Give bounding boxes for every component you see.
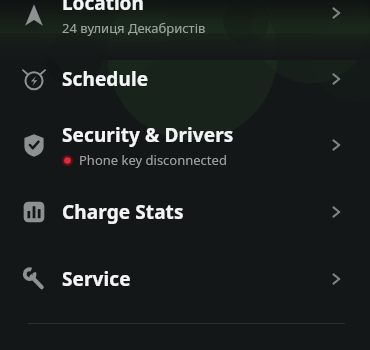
staticText: Location xyxy=(62,0,144,16)
other: Security and Drivers xyxy=(22,133,46,157)
button[interactable]: Location xyxy=(0,0,370,46)
staticText: Charge Stats xyxy=(62,199,184,225)
staticText: Service xyxy=(62,266,131,292)
button[interactable]: Security and Drivers xyxy=(0,112,370,178)
button[interactable]: Charge Stats xyxy=(0,178,370,245)
staticText: Security & Drivers xyxy=(62,122,234,148)
other: Service xyxy=(22,267,46,291)
other: Schedule xyxy=(22,67,46,91)
button[interactable]: Schedule xyxy=(0,46,370,112)
staticText: Schedule xyxy=(62,66,149,92)
staticText: 24 вулиця Декабристів xyxy=(62,19,206,36)
staticText: Phone key disconnected xyxy=(79,151,227,169)
button[interactable]: Service xyxy=(0,245,370,312)
other: Charge Stats xyxy=(22,200,46,224)
other: Location xyxy=(22,3,46,27)
